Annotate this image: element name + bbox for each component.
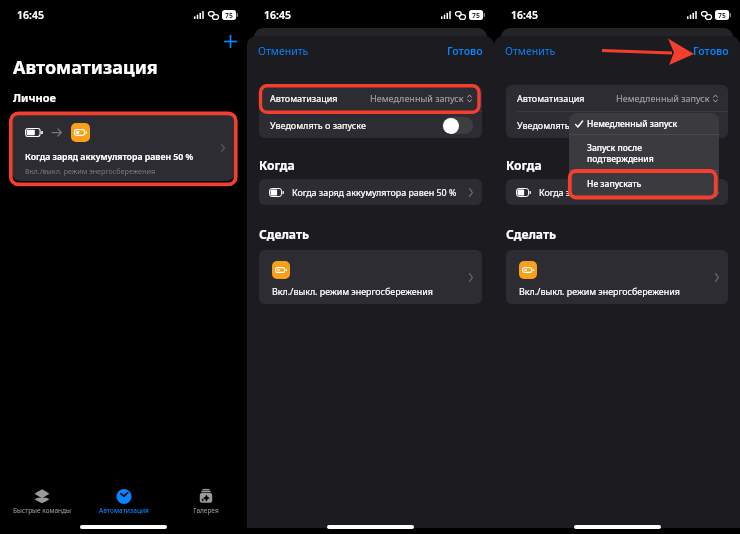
staticText: Не запускать: [587, 178, 642, 190]
staticText: Когда заряд аккумулятора равен 50 %: [539, 186, 704, 198]
button[interactable]: Уведомлять о запуске: [259, 112, 482, 138]
staticText: Немедленный запуск: [370, 92, 464, 104]
staticText: Автоматизация: [270, 92, 338, 104]
button[interactable]: Галерея: [165, 483, 247, 520]
staticText: Вкл./выкл. режим энергосбережения: [272, 285, 433, 297]
button[interactable]: Немедленный запуск: [569, 113, 719, 134]
button[interactable]: Вкл./выкл. режим энергосбережения: [506, 250, 728, 304]
staticText: 16:45: [511, 8, 538, 22]
staticText: Быстрые команды: [13, 506, 71, 515]
button[interactable]: Не запускать: [569, 171, 719, 196]
button[interactable]: Готово: [441, 40, 494, 62]
staticText: Автоматизация: [517, 92, 585, 104]
button[interactable]: Вкл./выкл. режим энергосбережения: [259, 250, 482, 304]
staticText: Когда заряд аккумулятора равен 50 %: [292, 186, 457, 198]
button[interactable]: [442, 117, 473, 134]
button[interactable]: Когда заряд аккумулятора равен 50 %: [12, 114, 235, 181]
staticText: 75: [225, 11, 233, 20]
button[interactable]: Отменить: [494, 40, 562, 62]
button[interactable]: Отменить: [247, 40, 315, 62]
staticText: Сделать: [259, 226, 310, 242]
staticText: Сделать: [506, 226, 557, 242]
button[interactable]: Автоматизация: [83, 483, 165, 520]
button[interactable]: Автоматизация: [259, 85, 482, 111]
button[interactable]: Когда заряд аккумулятора равен 50 %: [259, 179, 482, 205]
staticText: 16:45: [264, 8, 291, 22]
staticText: Немедленный запуск: [616, 92, 710, 104]
staticText: Галерея: [193, 506, 219, 515]
staticText: Вкл./выкл. режим энергосбережения: [519, 285, 680, 297]
button[interactable]: Готово: [687, 40, 740, 62]
staticText: Вкл./выкл. режим энергосбережения: [25, 166, 156, 176]
staticText: Уведомлять о запуске: [517, 119, 613, 131]
button[interactable]: Запуск после подтверждения: [569, 135, 719, 170]
button[interactable]: Уведомлять о запуске: [506, 112, 728, 138]
button[interactable]: Быстрые команды: [0, 483, 83, 520]
staticText: 16:45: [17, 8, 44, 22]
staticText: Когда: [259, 157, 295, 173]
button[interactable]: Автоматизация: [506, 85, 728, 111]
button[interactable]: Создать автоматизацию: [220, 31, 240, 51]
staticText: Уведомлять о запуске: [270, 119, 366, 131]
staticText: Автоматизация: [99, 506, 149, 515]
staticText: 75: [472, 11, 480, 20]
staticText: Когда: [506, 157, 542, 173]
staticText: 75: [718, 11, 726, 20]
staticText: Когда заряд аккумулятора равен 50 %: [25, 151, 194, 163]
staticText: Запуск после подтверждения: [587, 142, 654, 164]
staticText: Личное: [13, 90, 56, 105]
button[interactable]: Когда заряд аккумулятора равен 50 %: [506, 179, 728, 205]
staticText: Автоматизация: [13, 55, 158, 80]
staticText: Немедленный запуск: [587, 118, 678, 130]
